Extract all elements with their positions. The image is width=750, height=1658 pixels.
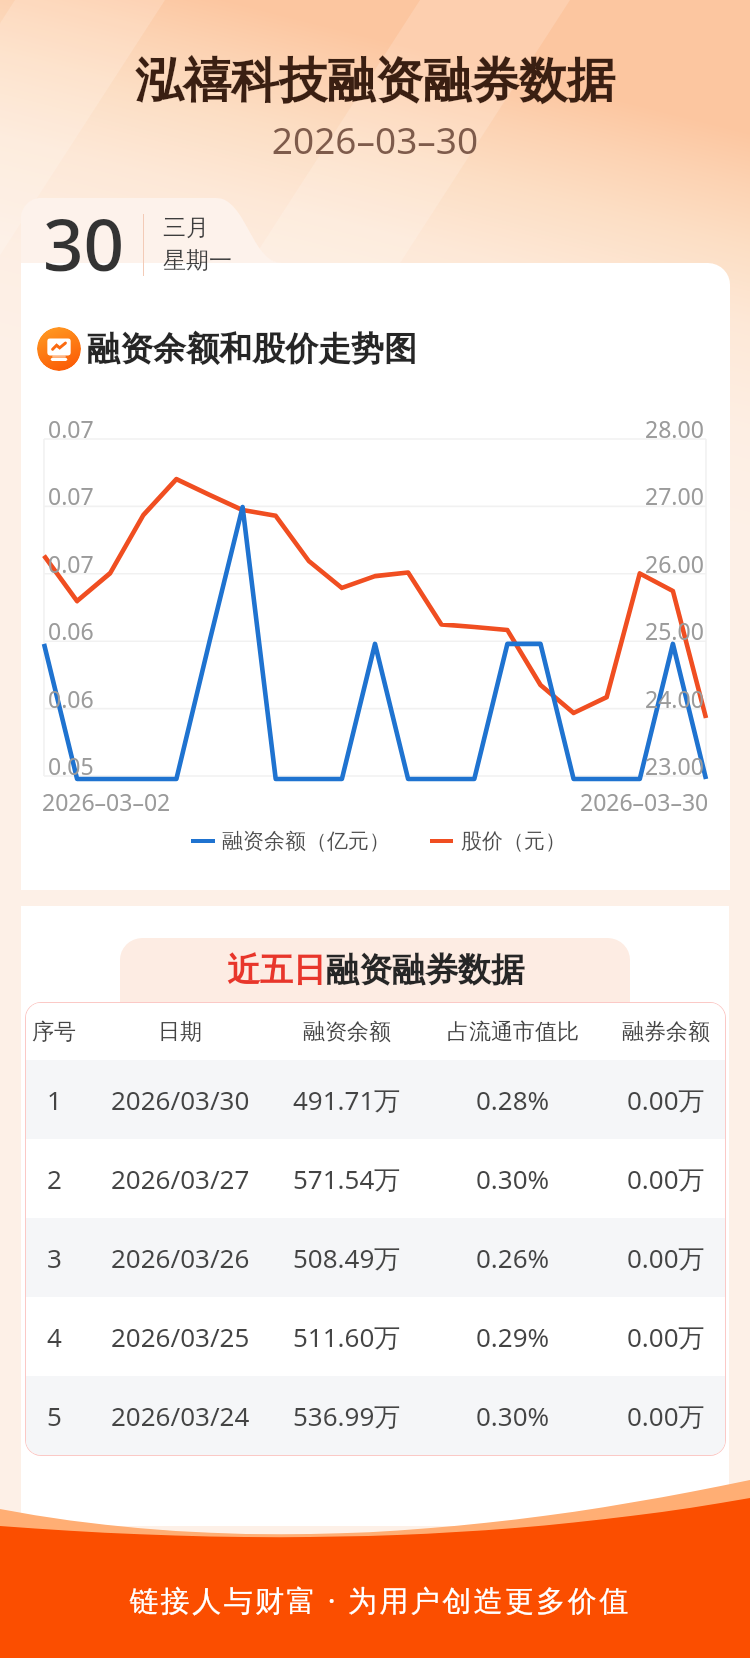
- staticText: 0.06: [48, 615, 94, 646]
- button[interactable]: 5: [26, 1376, 725, 1455]
- staticText: 2026–03–30: [0, 114, 750, 164]
- staticText: 星期一: [163, 246, 232, 275]
- staticText: 融券余额: [622, 1018, 710, 1046]
- staticText: 0.28%: [476, 1082, 550, 1117]
- button[interactable]: 融资余额（亿元）: [191, 828, 390, 854]
- staticText: 三月: [163, 213, 209, 242]
- staticText: 0.00万: [627, 1082, 705, 1118]
- staticText: 3: [47, 1240, 62, 1275]
- staticText: 泓禧科技融资融券数据: [0, 51, 750, 111]
- staticText: 30: [43, 195, 125, 292]
- staticText: 0.07: [48, 480, 94, 511]
- staticText: 2026–03–02: [42, 786, 171, 817]
- staticText: 近五日: [227, 949, 326, 991]
- staticText: 4: [47, 1319, 62, 1354]
- staticText: 0.00万: [627, 1319, 705, 1355]
- button[interactable]: 序号: [26, 1003, 725, 1060]
- button[interactable]: 走势图: [37, 327, 417, 371]
- staticText: 5: [47, 1398, 62, 1433]
- staticText: 0.00万: [627, 1240, 705, 1276]
- staticText: 2026/03/26: [111, 1240, 250, 1275]
- button[interactable]: 1: [26, 1060, 725, 1139]
- staticText: 序号: [32, 1018, 76, 1046]
- staticText: 2026/03/24: [111, 1398, 250, 1433]
- staticText: 25.00: [645, 615, 704, 646]
- other: 走势图: [37, 327, 81, 371]
- staticText: 491.71万: [293, 1082, 401, 1118]
- staticText: 28.00: [645, 413, 704, 444]
- button[interactable]: 近五日: [120, 938, 630, 1002]
- staticText: 2: [47, 1161, 62, 1196]
- button[interactable]: 股价（元）: [430, 828, 566, 854]
- staticText: 26.00: [645, 548, 704, 579]
- staticText: 508.49万: [293, 1240, 401, 1276]
- staticText: 2026–03–30: [580, 786, 709, 817]
- staticText: 2026/03/25: [111, 1319, 250, 1354]
- button[interactable]: 2: [26, 1139, 725, 1218]
- staticText: 0.00万: [627, 1398, 705, 1434]
- staticText: 融资余额: [303, 1018, 391, 1046]
- button[interactable]: 4: [26, 1297, 725, 1376]
- staticText: 24.00: [645, 683, 704, 714]
- staticText: 1: [47, 1082, 62, 1117]
- staticText: 0.30%: [476, 1161, 550, 1196]
- staticText: 日期: [158, 1018, 202, 1046]
- staticText: 27.00: [645, 480, 704, 511]
- staticText: 融资融券数据: [326, 949, 524, 991]
- staticText: 占流通市值比: [447, 1018, 579, 1046]
- staticText: 23.00: [645, 750, 704, 781]
- staticText: 2026/03/27: [111, 1161, 250, 1196]
- button[interactable]: 3: [26, 1218, 725, 1297]
- staticText: 511.60万: [293, 1319, 401, 1355]
- staticText: 571.54万: [293, 1161, 401, 1197]
- staticText: 0.07: [48, 548, 94, 579]
- staticText: 0.30%: [476, 1398, 550, 1433]
- staticText: 0.00万: [627, 1161, 705, 1197]
- staticText: 融资余额（亿元）: [222, 828, 390, 854]
- staticText: 0.29%: [476, 1319, 550, 1354]
- staticText: 股价（元）: [461, 828, 566, 854]
- staticText: 融资余额和股价走势图: [87, 328, 417, 370]
- staticText: 链接人与财富 · 为用户创造更多价值: [5, 1580, 750, 1620]
- staticText: 0.06: [48, 683, 94, 714]
- staticText: 2026/03/30: [111, 1082, 250, 1117]
- staticText: 0.07: [48, 413, 94, 444]
- staticText: 536.99万: [293, 1398, 401, 1434]
- staticText: 0.05: [48, 750, 94, 781]
- staticText: 0.26%: [476, 1240, 550, 1275]
